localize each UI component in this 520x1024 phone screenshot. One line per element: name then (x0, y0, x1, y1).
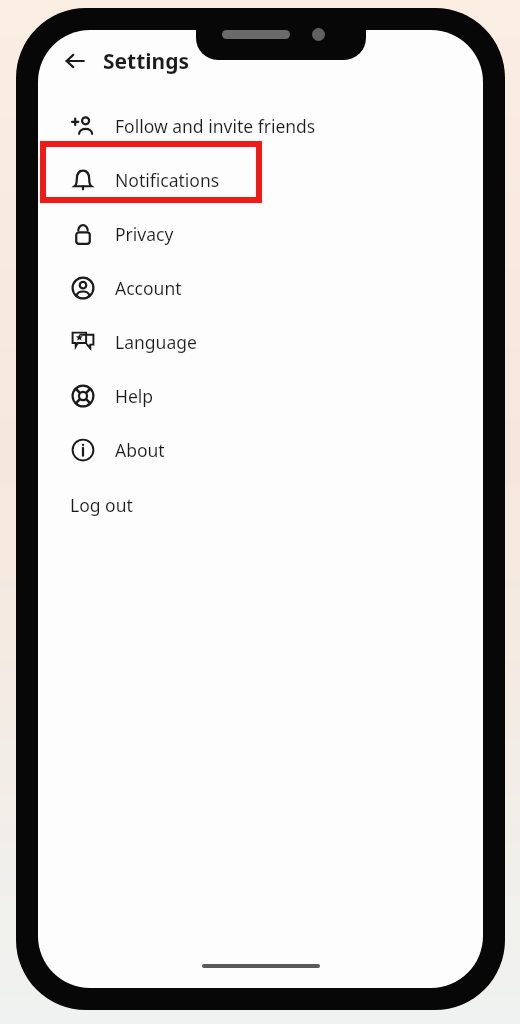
button[interactable]: Help (38, 369, 483, 423)
button[interactable]: Privacy (38, 207, 483, 261)
button[interactable]: Follow and invite friends (38, 99, 483, 153)
button[interactable]: Back (58, 44, 92, 78)
staticText: Help (115, 384, 154, 408)
button[interactable]: Language (38, 315, 483, 369)
button[interactable]: Account (38, 261, 483, 315)
button[interactable]: About (38, 423, 483, 477)
staticText: About (115, 438, 165, 462)
staticText: Notifications (115, 168, 220, 192)
staticText: Privacy (115, 222, 174, 246)
staticText: Settings (103, 47, 190, 76)
staticText: Follow and invite friends (115, 114, 316, 138)
staticText: Log out (70, 493, 133, 517)
button[interactable]: Log out (38, 477, 483, 533)
staticText: Language (115, 330, 197, 354)
staticText: Account (115, 276, 182, 300)
button[interactable]: Notifications (38, 153, 483, 207)
